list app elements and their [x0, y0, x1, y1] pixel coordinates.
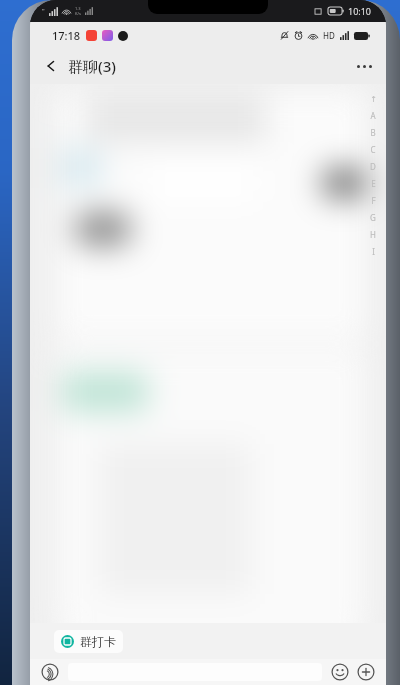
button[interactable]: Voice message: [40, 662, 60, 682]
staticText: C: [370, 144, 376, 155]
button[interactable]: Alphabet index: [366, 92, 380, 260]
staticText: 1.3: [75, 6, 81, 11]
staticText: G: [370, 212, 376, 223]
staticText: 10:10: [348, 5, 372, 17]
staticText: HD: [323, 30, 335, 41]
staticText: D: [370, 161, 376, 172]
staticText: 群聊(3): [68, 56, 116, 76]
button[interactable]: Back: [30, 52, 124, 80]
staticText: H: [370, 229, 376, 240]
staticText: A: [370, 110, 376, 121]
staticText: ↑: [370, 95, 377, 104]
staticText: 群打卡: [80, 634, 116, 649]
staticText: K/s: [75, 11, 81, 16]
button[interactable]: 群打卡: [54, 630, 123, 653]
staticText: E: [371, 178, 376, 189]
staticText: B: [370, 127, 376, 138]
staticText: F: [371, 195, 376, 206]
staticText: '': [42, 7, 45, 15]
staticText: 17:18: [52, 28, 81, 43]
button[interactable]: Emoji: [330, 662, 350, 682]
staticText: I: [372, 246, 375, 257]
button[interactable]: More functions: [356, 662, 376, 682]
button[interactable]: More options: [343, 55, 386, 78]
